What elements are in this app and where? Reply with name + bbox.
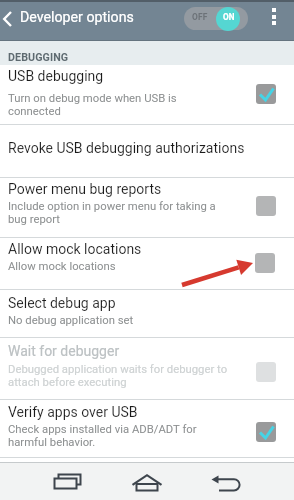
button[interactable]	[0, 65, 294, 124]
button[interactable]	[0, 238, 294, 289]
button[interactable]	[0, 125, 294, 177]
button[interactable]	[0, 178, 294, 237]
button[interactable]	[255, 253, 275, 273]
button[interactable]	[0, 338, 294, 399]
button[interactable]	[256, 362, 276, 382]
staticText: Power menu bug reports	[8, 181, 162, 197]
button[interactable]	[256, 84, 276, 104]
button[interactable]	[0, 400, 294, 457]
staticText: Wait for debugger	[8, 343, 120, 359]
staticText: ON	[223, 12, 235, 22]
staticText: bug report	[8, 213, 61, 226]
button[interactable]	[256, 196, 276, 216]
staticText: No debug application set	[8, 314, 134, 327]
staticText: Revoke USB debugging authorizations	[8, 140, 245, 156]
staticText: Debugged application waits for debugger …	[8, 363, 228, 376]
staticText: OFF	[192, 12, 208, 22]
button[interactable]	[127, 462, 167, 500]
button[interactable]	[0, 0, 18, 41]
staticText: DEBUGGING	[8, 51, 69, 64]
button[interactable]	[184, 7, 248, 30]
staticText: USB debugging	[8, 68, 104, 84]
staticText: Verify apps over USB	[8, 404, 138, 420]
button[interactable]	[208, 462, 248, 500]
staticText: Include option in power menu for taking …	[8, 200, 216, 213]
button[interactable]	[47, 462, 87, 500]
staticText: attach before executing	[8, 376, 127, 389]
staticText: Turn on debug mode when USB is	[8, 92, 177, 105]
staticText: Allow mock locations	[8, 241, 142, 257]
staticText: Check apps installed via ADB/ADT for	[8, 423, 197, 436]
staticText: harmful behavior.	[8, 436, 96, 449]
staticText: Select debug app	[8, 295, 116, 311]
button[interactable]	[264, 0, 284, 41]
staticText: Developer options	[20, 9, 134, 26]
staticText: Allow mock locations	[8, 260, 116, 273]
button[interactable]	[256, 422, 276, 442]
button[interactable]	[0, 290, 294, 337]
staticText: connected	[8, 105, 61, 118]
